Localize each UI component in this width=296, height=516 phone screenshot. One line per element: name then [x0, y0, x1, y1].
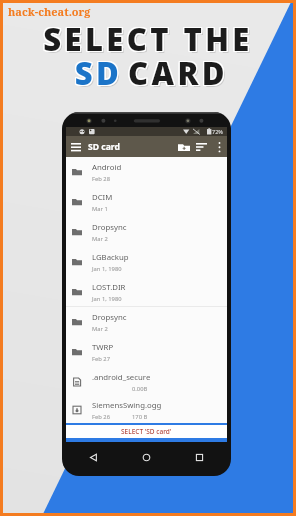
staticText: SELECT THE — [44, 17, 254, 59]
staticText: SELECT THE — [44, 19, 254, 61]
staticText: SELECT THE — [43, 18, 253, 60]
staticText: 0.00B — [132, 385, 148, 393]
button[interactable]: Dropsync — [66, 217, 227, 247]
staticText: Mar 1 — [92, 205, 108, 213]
staticText: Android — [92, 162, 122, 173]
staticText: Mar 2 — [92, 235, 108, 243]
button[interactable]: Android — [66, 157, 227, 187]
staticText: Feb 28 — [92, 175, 110, 183]
staticText: SELECT THE — [43, 17, 253, 59]
staticText: Jan 1, 1980 — [92, 295, 122, 303]
staticText: Dropsync — [92, 222, 127, 233]
staticText: DCIM — [92, 192, 113, 203]
staticText: SELECT THE — [44, 19, 254, 61]
button[interactable]: Dropsync — [66, 307, 227, 337]
button[interactable]: Home — [141, 452, 152, 463]
button[interactable]: SiemensSwing.ogg — [66, 397, 227, 423]
staticText: SD — [71, 54, 130, 96]
staticText: CARD — [129, 52, 229, 94]
button[interactable]: Menu — [68, 139, 84, 155]
staticText: CARD — [128, 52, 228, 94]
staticText: SD — [68, 52, 127, 94]
button[interactable]: New folder — [176, 139, 192, 155]
staticText: .android_secure — [92, 372, 151, 383]
button[interactable]: SELECT 'SD card' — [66, 425, 227, 438]
staticText: SD — [69, 51, 128, 93]
button[interactable]: DCIM — [66, 187, 227, 217]
staticText: SELECT 'SD card' — [121, 427, 172, 436]
staticText: SD — [70, 51, 129, 93]
staticText: Feb 27 — [92, 355, 110, 363]
staticText: CARD — [130, 54, 230, 96]
staticText: TWRP — [92, 342, 114, 353]
staticText: SELECT THE — [44, 18, 254, 60]
staticText: SD — [70, 53, 129, 95]
staticText: SELECT THE — [42, 19, 252, 61]
staticText: SELECT THE — [45, 20, 255, 62]
staticText: CARD — [128, 51, 228, 93]
staticText: CARD — [128, 53, 228, 95]
staticText: CARD — [129, 53, 229, 95]
staticText: SELECT THE — [43, 19, 253, 61]
staticText: Jan 1, 1980 — [92, 265, 122, 273]
button[interactable]: TWRP — [66, 337, 227, 367]
staticText: SD — [70, 52, 129, 94]
button[interactable]: Sort — [193, 139, 209, 155]
staticText: SD card — [88, 141, 120, 153]
staticText: SD — [69, 52, 128, 94]
button[interactable]: Back — [88, 452, 99, 463]
staticText: hack-cheat.org — [8, 4, 91, 19]
staticText: SELECT THE — [42, 18, 252, 60]
staticText: 170 B — [132, 413, 148, 421]
staticText: SD — [69, 53, 128, 95]
staticText: SD — [70, 53, 129, 95]
staticText: CARD — [127, 51, 227, 93]
staticText: Mar 2 — [92, 325, 108, 333]
staticText: Feb 26 — [92, 413, 110, 421]
button[interactable]: More options — [212, 140, 226, 154]
staticText: SD — [68, 51, 127, 93]
staticText: CARD — [127, 52, 227, 94]
button[interactable]: .android_secure — [66, 367, 227, 397]
staticText: LOST.DIR — [92, 282, 126, 293]
button[interactable]: LOST.DIR — [66, 277, 227, 307]
staticText: SD — [68, 53, 127, 95]
button[interactable]: LGBackup — [66, 247, 227, 277]
staticText: LGBackup — [92, 252, 129, 263]
staticText: 72% — [212, 128, 223, 135]
staticText: CARD — [129, 51, 229, 93]
staticText: SELECT THE — [42, 17, 252, 59]
staticText: CARD — [129, 53, 229, 95]
staticText: CARD — [127, 53, 227, 95]
staticText: SiemensSwing.ogg — [92, 400, 162, 411]
staticText: Dropsync — [92, 312, 127, 323]
button[interactable]: Recents — [194, 452, 205, 463]
